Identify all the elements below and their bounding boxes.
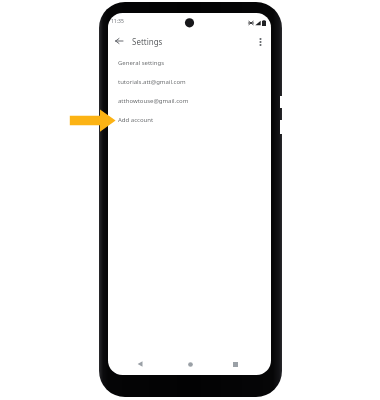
staticText: atthowtouse@gmail.com — [118, 97, 189, 105]
button[interactable]: Recent apps — [227, 356, 243, 372]
button[interactable]: tutorials.att@gmail.com — [108, 72, 271, 91]
staticText: Add account — [118, 116, 154, 124]
button[interactable]: Home — [182, 356, 198, 372]
button[interactable]: atthowtouse@gmail.com — [108, 91, 271, 110]
staticText: 11:35 — [111, 18, 124, 25]
button[interactable]: Back — [111, 33, 127, 49]
button[interactable]: General settings — [108, 53, 271, 72]
button[interactable]: Add account — [108, 110, 271, 129]
button[interactable]: Back — [132, 356, 148, 372]
staticText: Settings — [132, 36, 163, 47]
staticText: tutorials.att@gmail.com — [118, 78, 186, 86]
staticText: General settings — [118, 59, 165, 67]
button[interactable]: More options — [253, 35, 267, 49]
